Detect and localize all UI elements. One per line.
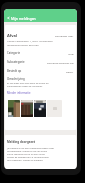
- staticText: Bevindt op: [7, 69, 22, 73]
- staticText: vuilniszakken naast de container.: [7, 85, 43, 88]
- staticText: Melding doorgezet: [7, 140, 36, 144]
- staticText: de gemeente. Hierbij is ook de status: [7, 150, 48, 153]
- button[interactable]: Minder informatie: [7, 91, 31, 95]
- staticText: toch bekeken. Vragen of melding: [7, 159, 43, 162]
- button[interactable]: Foto: [8, 100, 20, 117]
- button[interactable]: Mijn meldingen: [4, 9, 77, 22]
- staticText: Nieuw Amsterdam 1, GVPL Amsterdam: [7, 39, 53, 42]
- staticText: Dakrit: [66, 70, 74, 73]
- staticText: omdat de gemeente is a componenten: [7, 156, 49, 159]
- button[interactable]: Foto: [34, 100, 46, 117]
- staticText: Dumping afvalgrof vuil: [47, 61, 74, 64]
- staticText: Doorgezet naar: [55, 34, 74, 37]
- staticText: Afval: [7, 33, 18, 38]
- staticText: Categorie: [7, 51, 21, 55]
- staticText: Mijn meldingen: [11, 16, 36, 20]
- button[interactable]: Foto: [21, 100, 33, 117]
- staticText: van je melding niet in te zien via de: [7, 153, 45, 156]
- staticText: Omschrijving: [7, 77, 25, 81]
- staticText: Meldingsnummer 6557396: [7, 43, 39, 46]
- staticText: Je melding is via een meldingssysteem na…: [7, 147, 54, 150]
- staticText: Er ligt weer heel veel afval op straat e…: [7, 82, 49, 85]
- staticText: Afval: [68, 52, 74, 55]
- staticText: Subcategorie: [7, 60, 25, 64]
